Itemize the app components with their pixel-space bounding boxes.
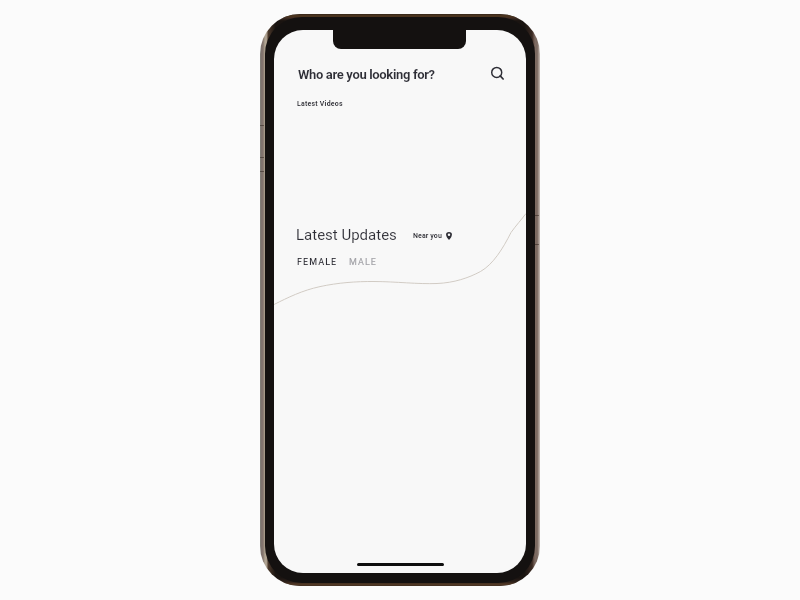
button[interactable]: MALE	[344, 251, 383, 274]
staticText: Latest Updates	[296, 226, 397, 244]
staticText: Who are you looking for?	[298, 67, 435, 82]
staticText: MALE	[349, 257, 377, 268]
button[interactable]: Latest Videos	[291, 94, 349, 114]
button[interactable]: FEMALE	[291, 251, 344, 274]
staticText: Latest Videos	[297, 100, 343, 108]
button[interactable]: Near you	[407, 227, 458, 245]
staticText: Near you	[413, 232, 442, 240]
button[interactable]: Search	[487, 63, 509, 85]
staticText: FEMALE	[297, 257, 338, 268]
